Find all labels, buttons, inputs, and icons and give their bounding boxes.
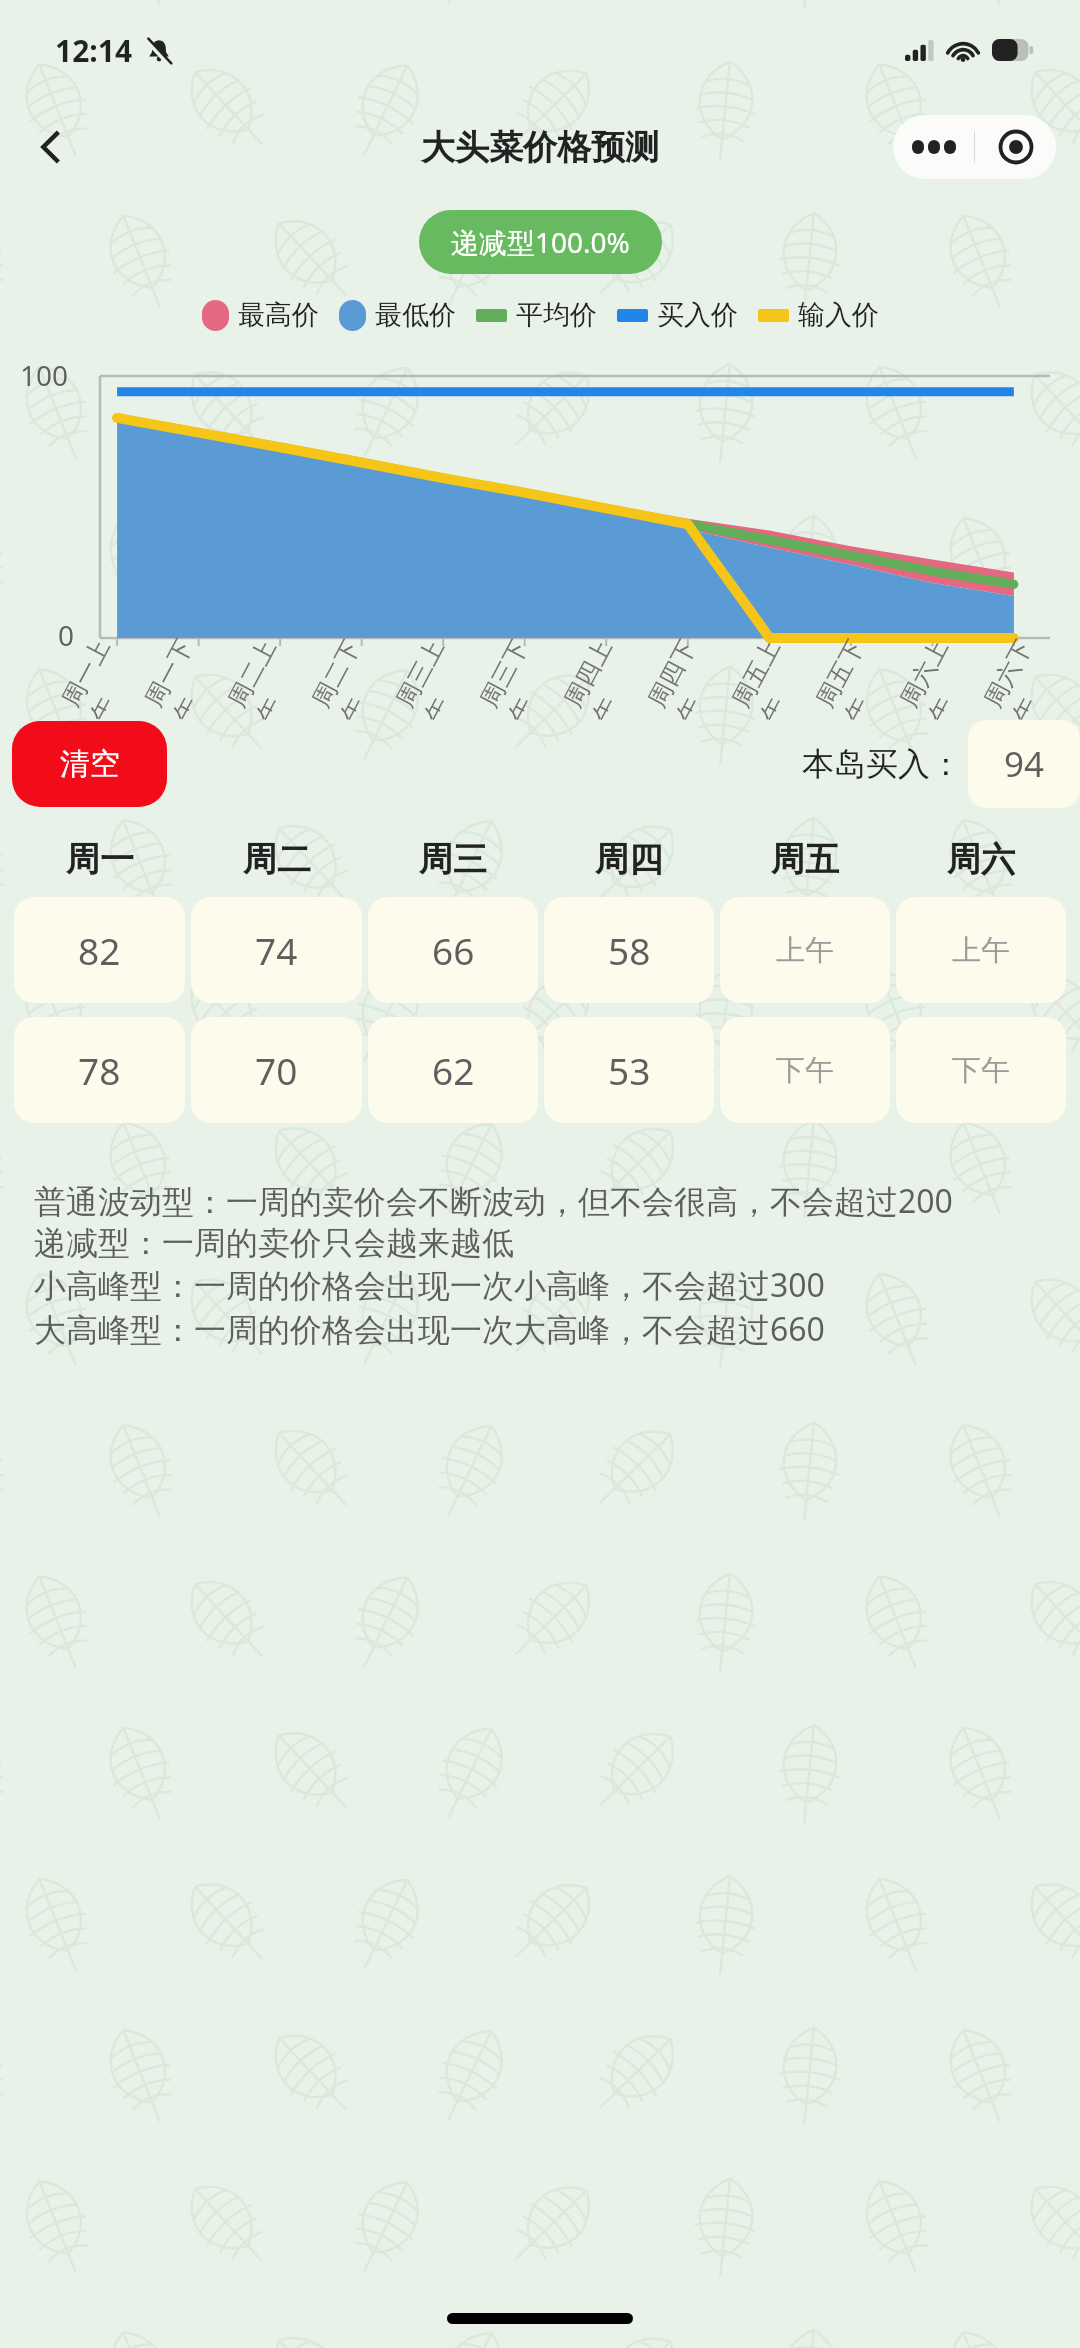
staticText: 82 bbox=[78, 925, 121, 975]
staticText: 周一下午 bbox=[139, 625, 222, 721]
button[interactable]: 82 bbox=[14, 897, 185, 1003]
staticText: 74 bbox=[255, 925, 298, 975]
staticText: 上午 bbox=[776, 932, 834, 969]
staticText: 周三 bbox=[419, 838, 487, 881]
staticText: 下午 bbox=[952, 1052, 1010, 1089]
staticText: 本岛买入： bbox=[802, 744, 962, 784]
button[interactable]: 53 bbox=[544, 1017, 714, 1123]
staticText: 平均价 bbox=[516, 298, 597, 332]
staticText: 大头菜价格预测 bbox=[421, 126, 659, 169]
staticText: 周五上午 bbox=[726, 624, 810, 722]
staticText: 小高峰型：一周的价格会出现一次小高峰，不会超过300 bbox=[34, 1263, 825, 1307]
staticText: 周二 bbox=[243, 838, 311, 881]
staticText: 70 bbox=[255, 1045, 298, 1095]
button[interactable]: 下午 bbox=[896, 1017, 1066, 1123]
staticText: 周五下午 bbox=[810, 624, 894, 722]
staticText: 周五 bbox=[771, 838, 839, 881]
button[interactable]: 66 bbox=[368, 897, 538, 1003]
button[interactable]: 上午 bbox=[896, 897, 1066, 1003]
button[interactable]: 清空 bbox=[12, 721, 167, 807]
staticText: 58 bbox=[608, 925, 651, 975]
staticText: 周四 bbox=[595, 838, 663, 881]
staticText: 周四上午 bbox=[558, 624, 642, 722]
staticText: 清空 bbox=[60, 745, 120, 783]
staticText: 78 bbox=[78, 1045, 121, 1095]
staticText: 周六下午 bbox=[978, 624, 1062, 722]
button[interactable]: 74 bbox=[191, 897, 362, 1003]
staticText: 周六 bbox=[947, 838, 1015, 881]
staticText: 上午 bbox=[952, 932, 1010, 969]
staticText: 周一 bbox=[66, 838, 134, 881]
staticText: 最高价 bbox=[238, 298, 319, 332]
button[interactable]: Back bbox=[22, 118, 80, 176]
staticText: 周一上午 bbox=[56, 625, 139, 721]
staticText: 普通波动型：一周的卖价会不断波动，但不会很高，不会超过200 bbox=[34, 1179, 953, 1223]
staticText: 大高峰型：一周的价格会出现一次大高峰，不会超过660 bbox=[34, 1307, 825, 1351]
staticText: 输入价 bbox=[798, 298, 879, 332]
button[interactable]: 62 bbox=[368, 1017, 538, 1123]
staticText: 递减型：一周的卖价只会越来越低 bbox=[34, 1223, 514, 1263]
staticText: 周六上午 bbox=[894, 624, 978, 722]
staticText: 100 bbox=[20, 356, 69, 394]
staticText: 62 bbox=[432, 1045, 475, 1095]
button[interactable]: 78 bbox=[14, 1017, 185, 1123]
staticText: 周四下午 bbox=[642, 624, 726, 722]
staticText: 周二下午 bbox=[306, 624, 390, 722]
button[interactable]: 58 bbox=[544, 897, 714, 1003]
staticText: 周三下午 bbox=[474, 624, 558, 722]
staticText: 递减型100.0% bbox=[451, 223, 630, 261]
staticText: 周三上午 bbox=[390, 624, 474, 722]
staticText: 下午 bbox=[776, 1052, 834, 1089]
staticText: 53 bbox=[608, 1045, 651, 1095]
button[interactable]: Close mini program bbox=[975, 115, 1056, 179]
staticText: 最低价 bbox=[375, 298, 456, 332]
staticText: 0 bbox=[58, 616, 75, 654]
button[interactable]: 70 bbox=[191, 1017, 362, 1123]
button[interactable]: 递减型100.0% bbox=[419, 210, 662, 274]
button[interactable]: 下午 bbox=[720, 1017, 890, 1123]
button[interactable]: More options bbox=[893, 115, 974, 179]
staticText: 周二上午 bbox=[222, 624, 306, 722]
staticText: 66 bbox=[432, 925, 475, 975]
staticText: 94 bbox=[1004, 740, 1045, 788]
button[interactable]: 94 bbox=[968, 720, 1080, 808]
staticText: 买入价 bbox=[657, 298, 738, 332]
staticText: 12:14 bbox=[55, 30, 133, 71]
button[interactable]: 上午 bbox=[720, 897, 890, 1003]
